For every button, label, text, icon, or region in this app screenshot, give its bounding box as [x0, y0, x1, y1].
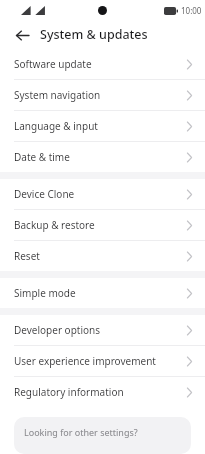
staticText: Simple mode — [14, 286, 76, 300]
button[interactable]: Date & time — [0, 142, 205, 172]
staticText: Looking for other settings? — [24, 426, 138, 438]
button[interactable]: Backup & restore — [0, 210, 205, 240]
staticText: Date & time — [14, 150, 70, 164]
staticText: System & updates — [40, 26, 148, 43]
button[interactable]: Reset — [0, 241, 205, 271]
button[interactable]: Simple mode — [0, 278, 205, 308]
staticText: Developer options — [14, 323, 101, 337]
staticText: Backup & restore — [14, 218, 95, 232]
button[interactable]: Back — [10, 23, 34, 47]
staticText: Device Clone — [14, 187, 75, 201]
button[interactable]: Language & input — [0, 111, 205, 141]
staticText: Regulatory information — [14, 385, 124, 399]
staticText: System navigation — [14, 88, 101, 102]
staticText: Software update — [14, 57, 92, 71]
staticText: Language & input — [14, 119, 98, 133]
button[interactable]: User experience improvement — [0, 346, 205, 376]
staticText: User experience improvement — [14, 354, 156, 368]
button[interactable]: Device Clone — [0, 179, 205, 209]
button[interactable]: Software update — [0, 49, 205, 79]
staticText: Reset — [14, 249, 40, 263]
button[interactable]: Developer options — [0, 315, 205, 345]
button[interactable]: System navigation — [0, 80, 205, 110]
staticText: 10:00 — [181, 5, 202, 16]
button[interactable]: Regulatory information — [0, 377, 205, 407]
